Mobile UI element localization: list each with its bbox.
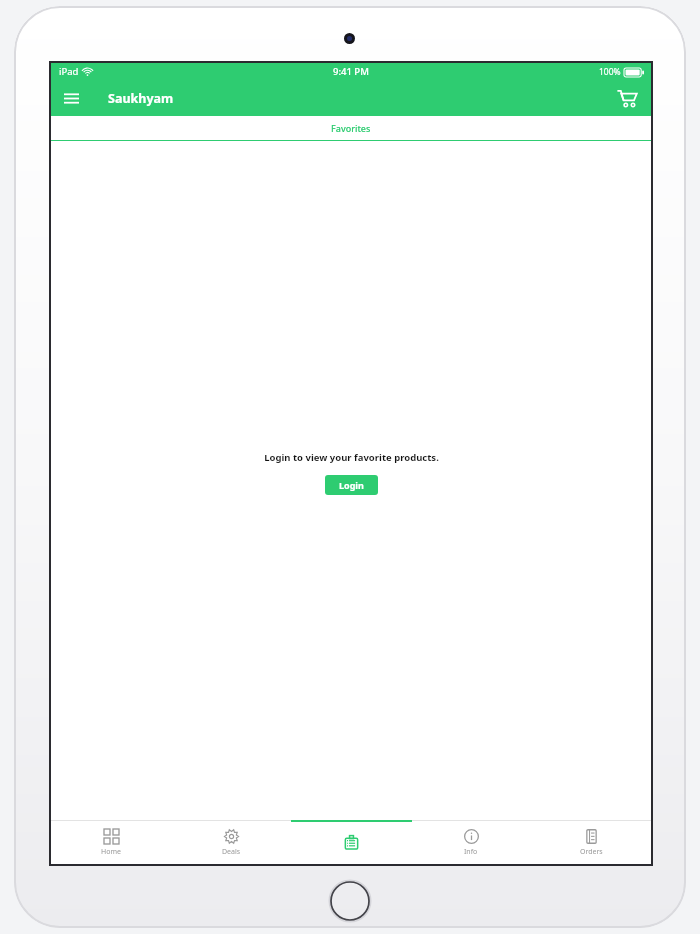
staticText: 100% xyxy=(599,66,621,78)
staticText: Orders xyxy=(580,847,603,857)
button[interactable]: Favorites xyxy=(51,116,651,140)
button[interactable]: Deals xyxy=(171,821,291,864)
staticText: Home xyxy=(101,847,121,857)
button[interactable]: Home xyxy=(51,821,171,864)
staticText: Deals xyxy=(222,847,241,857)
staticText: 9:41 PM xyxy=(333,65,369,78)
button[interactable]: Favorites xyxy=(291,821,411,864)
staticText: Info xyxy=(464,847,478,857)
button[interactable]: Open navigation menu xyxy=(56,83,86,113)
button[interactable]: Login xyxy=(325,475,378,495)
staticText: Favorites xyxy=(331,122,371,134)
staticText: iPad xyxy=(59,65,79,78)
button[interactable]: Orders xyxy=(531,821,651,864)
button[interactable]: Shopping cart xyxy=(612,83,642,113)
button[interactable]: Info xyxy=(411,821,531,864)
staticText: Saukhyam xyxy=(108,90,174,107)
staticText: Login to view your favorite products. xyxy=(264,451,439,464)
staticText: Login xyxy=(339,479,364,491)
